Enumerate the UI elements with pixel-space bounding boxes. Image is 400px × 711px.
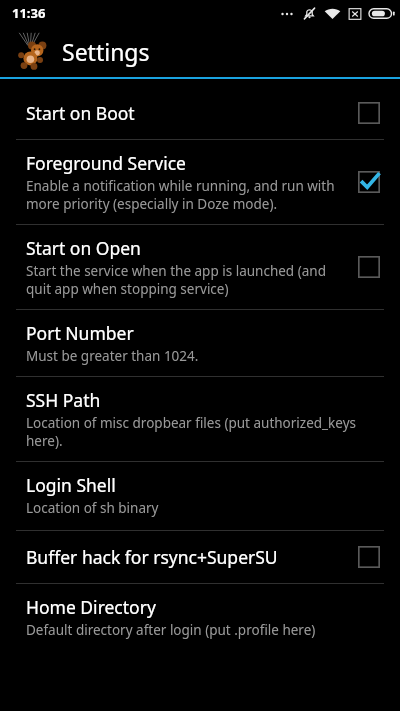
button[interactable]: Foreground Service	[0, 140, 400, 224]
button[interactable]: Start on Boot	[0, 87, 400, 139]
staticText: Default directory after login (put .prof…	[26, 621, 316, 639]
staticText: Home Directory	[26, 595, 156, 619]
button[interactable]: Buffer hack for rsync+SuperSU	[0, 531, 400, 583]
button[interactable]: SSH Path	[0, 377, 400, 461]
staticText: Location of sh binary	[26, 499, 159, 517]
button[interactable]: Start on Open	[0, 225, 400, 309]
other: Unchecked	[358, 546, 380, 568]
staticText: Port Number	[26, 321, 134, 345]
staticText: 11:36	[12, 4, 46, 22]
staticText: Must be greater than 1024.	[26, 347, 199, 365]
staticText: SSH Path	[26, 388, 101, 412]
staticText: Settings	[62, 36, 150, 67]
staticText: Enable a notification while running, and…	[26, 177, 346, 213]
other: Unchecked	[358, 102, 380, 124]
staticText: Login Shell	[26, 473, 116, 497]
staticText: Start on Boot	[26, 101, 135, 125]
button[interactable]: Login Shell	[0, 462, 400, 530]
staticText: Buffer hack for rsync+SuperSU	[26, 545, 278, 569]
staticText: Location of misc dropbear files (put aut…	[26, 414, 380, 450]
staticText: Start on Open	[26, 236, 141, 260]
staticText: Start the service when the app is launch…	[26, 262, 346, 298]
staticText: Foreground Service	[26, 151, 186, 175]
other: Checked	[358, 171, 380, 193]
button[interactable]: Port Number	[0, 310, 400, 376]
other: Unchecked	[358, 256, 380, 278]
button[interactable]: Home Directory	[0, 584, 400, 650]
